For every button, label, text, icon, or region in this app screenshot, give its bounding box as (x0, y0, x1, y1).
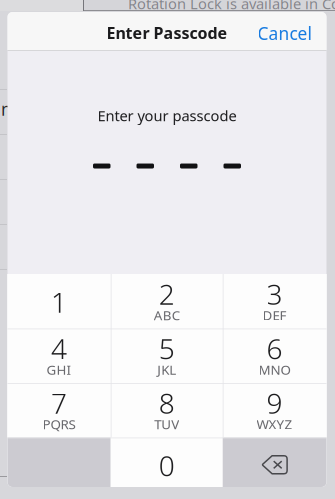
button[interactable]: Delete (223, 437, 326, 492)
button[interactable]: 4 (7, 328, 111, 383)
staticText: 1 (51, 283, 67, 321)
staticText: DEF (263, 306, 287, 324)
staticText: Cancel (257, 22, 311, 45)
staticText: ABC (154, 306, 180, 324)
staticText: JKL (157, 361, 176, 378)
staticText: n (1, 97, 12, 120)
button[interactable]: 8 (111, 383, 223, 437)
button[interactable]: 7 (7, 383, 111, 437)
button[interactable]: 2 (111, 274, 223, 328)
staticText: 3 (267, 275, 283, 313)
staticText: 5 (159, 330, 175, 367)
staticText: TUV (154, 415, 179, 433)
button[interactable]: Cancel (249, 14, 319, 52)
staticText: 4 (51, 330, 67, 367)
staticText: WXYZ (257, 415, 293, 433)
staticText: Rotation Lock is available in Con (128, 0, 335, 13)
button[interactable]: 5 (111, 328, 223, 383)
button[interactable]: 1 (7, 274, 111, 328)
staticText: PQRS (43, 415, 76, 433)
button[interactable]: 9 (223, 383, 326, 437)
button[interactable]: 0 (111, 437, 223, 492)
staticText: 6 (267, 330, 283, 367)
staticText: 7 (51, 384, 67, 422)
staticText: Enter Passcode (106, 22, 227, 43)
staticText: GHI (47, 361, 72, 378)
staticText: 8 (159, 384, 175, 422)
staticText: Enter your passcode (97, 106, 236, 125)
button[interactable]: 3 (223, 274, 326, 328)
staticText: MNO (259, 361, 291, 378)
staticText: 2 (159, 275, 175, 313)
staticText: 9 (267, 384, 283, 422)
button[interactable]: 6 (223, 328, 326, 383)
staticText: 0 (159, 447, 175, 484)
